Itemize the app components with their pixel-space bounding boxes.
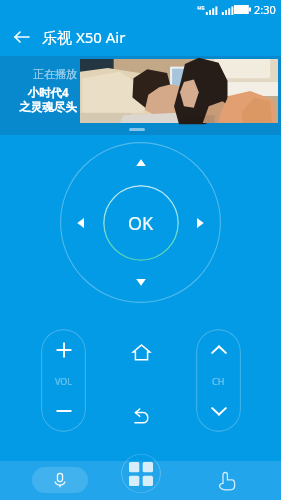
staticText: CH <box>212 375 225 387</box>
button[interactable]: Back <box>8 23 36 51</box>
staticText: 小时代4 之灵魂尽头 <box>19 85 77 115</box>
button[interactable]: Down <box>128 269 154 295</box>
button[interactable]: Voice <box>32 467 88 493</box>
staticText: OK <box>128 211 154 236</box>
staticText: 正在播放 <box>33 67 77 81</box>
button[interactable]: VOL <box>41 329 86 432</box>
button[interactable]: OK <box>103 185 179 261</box>
button[interactable]: Right <box>187 210 213 236</box>
button[interactable]: Left <box>68 210 94 236</box>
staticText: 乐视 X50 Air <box>42 27 126 47</box>
button[interactable]: Home <box>124 335 158 369</box>
button[interactable]: Apps <box>121 454 161 493</box>
button[interactable]: CH <box>196 329 241 432</box>
staticText: 2:30 <box>254 2 276 17</box>
button[interactable]: Touchpad <box>209 467 245 494</box>
staticText: VOL <box>55 375 73 387</box>
button[interactable]: 正在播放 <box>0 56 281 135</box>
button[interactable]: Back <box>124 399 158 433</box>
button[interactable]: Up <box>128 150 154 176</box>
